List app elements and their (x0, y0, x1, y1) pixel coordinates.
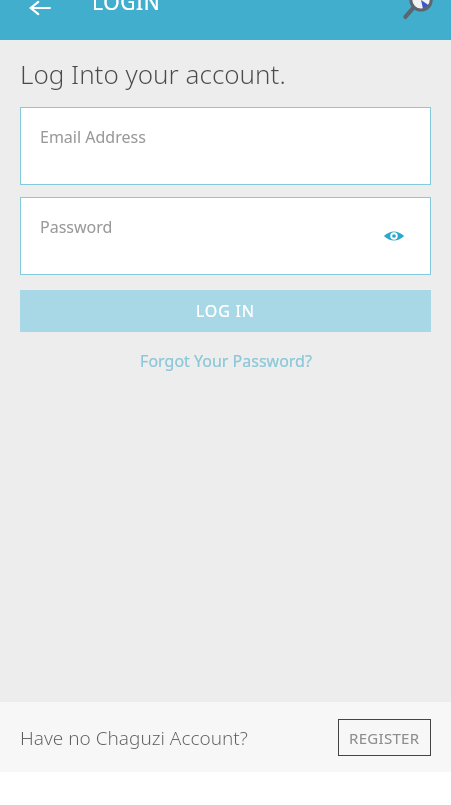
staticText: LOGIN (92, 0, 161, 17)
staticText: REGISTER (349, 728, 420, 748)
button[interactable]: Back (18, 0, 62, 28)
button[interactable]: Password (20, 197, 431, 275)
button[interactable]: REGISTER (338, 719, 431, 756)
staticText: Password (40, 216, 113, 238)
staticText: Log Into your account. (20, 56, 286, 91)
staticText: Email Address (40, 126, 146, 148)
staticText: LOG IN (196, 300, 255, 322)
button[interactable]: Email Address (20, 107, 431, 185)
button[interactable]: Forgot Your Password? (132, 348, 320, 374)
button[interactable]: Show password (377, 219, 411, 253)
button[interactable]: LOG IN (20, 290, 431, 332)
staticText: Forgot Your Password? (140, 350, 312, 372)
staticText: Have no Chaguzi Account? (20, 725, 248, 751)
button[interactable]: Search (395, 0, 443, 24)
